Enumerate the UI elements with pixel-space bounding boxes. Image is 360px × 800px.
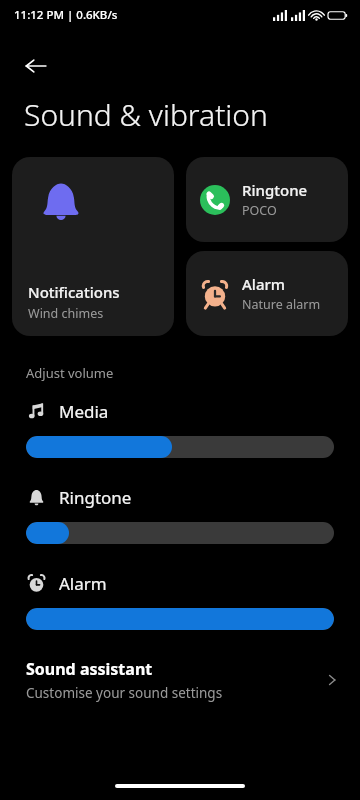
- staticText: Wind chimes: [28, 305, 104, 322]
- button[interactable]: Back: [12, 42, 60, 90]
- button[interactable]: [26, 436, 334, 458]
- staticText: Customise your sound settings: [26, 684, 223, 702]
- button[interactable]: Ringtone: [186, 157, 348, 242]
- button[interactable]: Notifications: [12, 157, 174, 336]
- staticText: Ringtone: [242, 180, 308, 200]
- staticText: Notifications: [28, 282, 120, 302]
- staticText: Sound assistant: [26, 658, 153, 680]
- button[interactable]: [26, 608, 334, 630]
- staticText: Ringtone: [59, 486, 132, 509]
- button[interactable]: Sound assistant: [0, 652, 360, 712]
- button[interactable]: [26, 522, 334, 544]
- button[interactable]: Alarm: [186, 251, 348, 336]
- staticText: Adjust volume: [26, 364, 114, 382]
- staticText: Sound & vibration: [24, 94, 268, 135]
- staticText: Nature alarm: [242, 296, 321, 313]
- staticText: Media: [59, 400, 109, 423]
- staticText: 11:12 PM | 0.6KB/s: [14, 7, 118, 23]
- staticText: POCO: [242, 202, 277, 219]
- staticText: Alarm: [242, 274, 286, 294]
- staticText: Alarm: [59, 572, 107, 595]
